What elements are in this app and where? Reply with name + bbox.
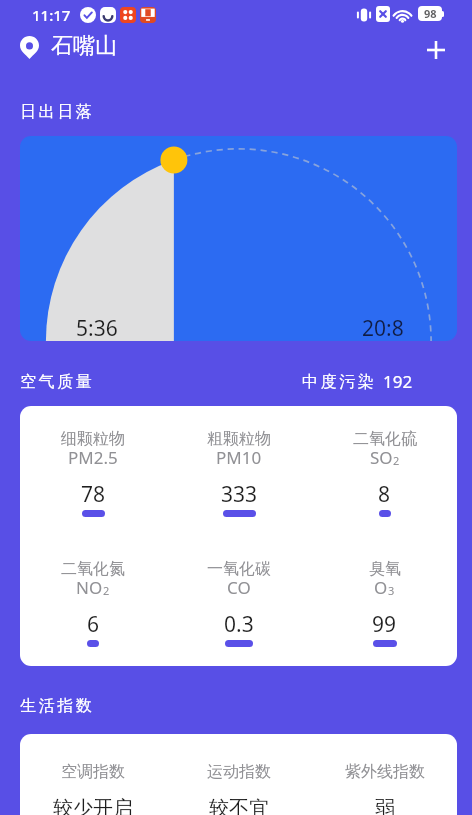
staticText: SO <box>370 446 393 469</box>
staticText: 细颗粒物 <box>61 429 125 449</box>
staticText: PM10 <box>216 446 262 469</box>
staticText: 紫外线指数 <box>345 762 425 782</box>
staticText: PM2.5 <box>68 446 118 469</box>
staticText: NO <box>76 576 103 599</box>
staticText: 3 <box>388 583 395 598</box>
staticText: 98 <box>424 6 437 21</box>
button[interactable]: 石嘴山 <box>20 32 117 60</box>
staticText: 99 <box>372 610 397 639</box>
staticText: 较不宜 <box>209 796 269 815</box>
staticText: 空调指数 <box>61 762 125 782</box>
staticText: O <box>374 576 388 599</box>
staticText: 较少开启 <box>53 796 133 815</box>
staticText: 粗颗粒物 <box>207 429 271 449</box>
staticText: 二氧化硫 <box>353 429 417 449</box>
staticText: 臭氧 <box>369 559 401 579</box>
button[interactable]: 中度污染 <box>0 370 413 393</box>
button[interactable]: 细颗粒物 <box>20 406 457 666</box>
button[interactable]: 5:36 <box>20 136 457 341</box>
staticText: 二氧化氮 <box>61 559 125 579</box>
staticText: 生活指数 <box>20 696 95 716</box>
staticText: 5:36 <box>76 314 118 341</box>
staticText: 333 <box>221 480 258 509</box>
button[interactable]: Add city <box>418 28 454 64</box>
staticText: 2 <box>103 583 110 598</box>
staticText: CO <box>227 576 251 599</box>
staticText: 运动指数 <box>207 762 271 782</box>
staticText: 2 <box>393 453 400 468</box>
staticText: 空气质量 <box>20 372 95 392</box>
staticText: 0.3 <box>224 610 254 639</box>
staticText: 6 <box>87 610 100 639</box>
staticText: 日出日落 <box>20 102 95 122</box>
staticText: 11:17 <box>32 5 71 25</box>
button[interactable]: 空调指数 <box>20 734 457 815</box>
staticText: 78 <box>81 480 106 509</box>
staticText: 20:8 <box>362 314 404 341</box>
staticText: 8 <box>378 480 391 509</box>
staticText: 一氧化碳 <box>207 559 271 579</box>
staticText: 中度污染 <box>302 372 377 392</box>
staticText: 192 <box>383 370 413 393</box>
staticText: 石嘴山 <box>51 32 117 60</box>
staticText: 弱 <box>375 796 395 815</box>
